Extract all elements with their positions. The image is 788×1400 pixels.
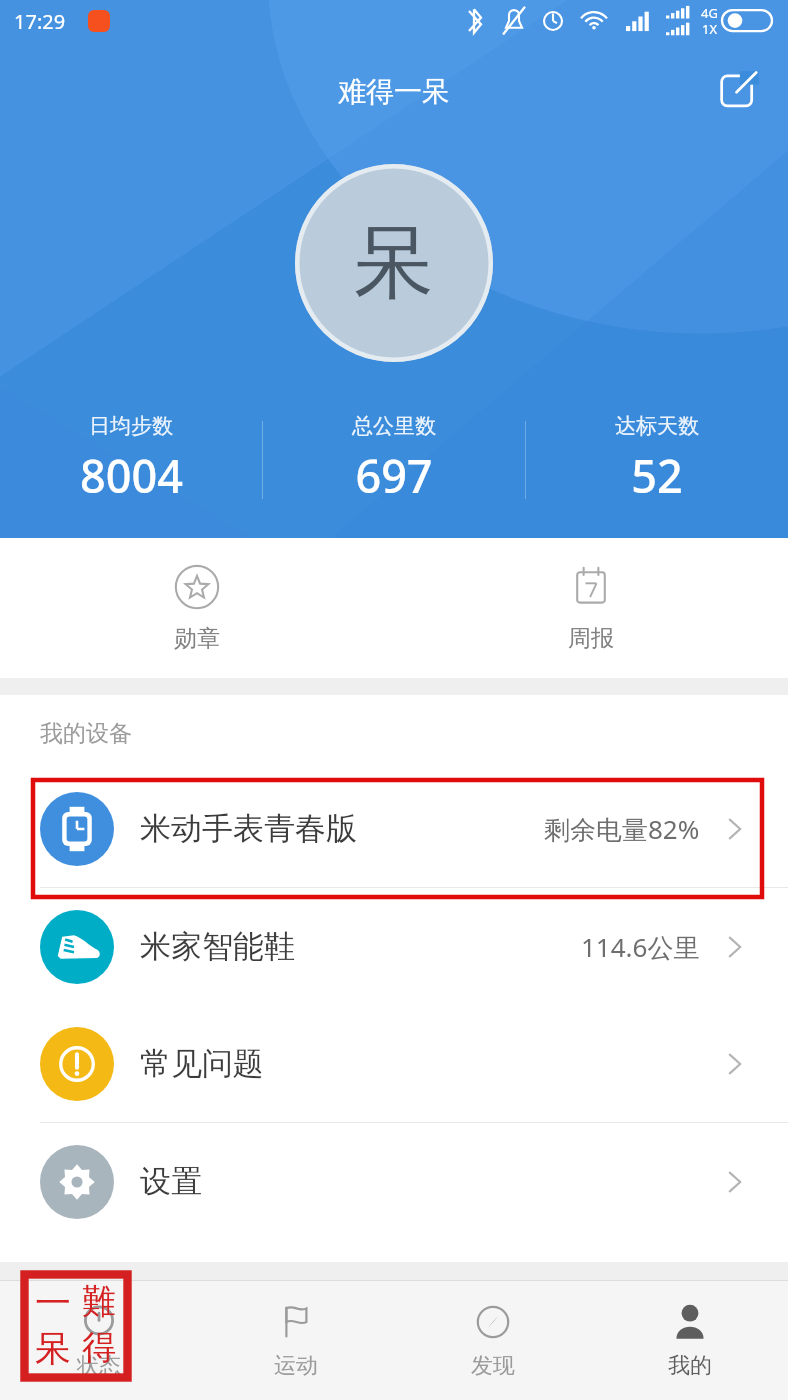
staticText: 勋章 [174, 624, 220, 653]
button[interactable]: 编辑 [706, 58, 770, 122]
staticText: 4G [701, 4, 718, 22]
staticText: 呆 [354, 213, 434, 314]
button[interactable]: 发现 [394, 1281, 591, 1400]
staticText: 达标天数 [615, 413, 699, 439]
staticText: 52 [631, 445, 683, 506]
staticText: 難 [76, 1280, 122, 1323]
button[interactable]: 总公里数 [263, 413, 525, 506]
button[interactable]: 勋章 [0, 538, 394, 678]
button[interactable]: 米家智能鞋 [0, 888, 788, 1005]
staticText: 一 [30, 1280, 76, 1325]
staticText: 8004 [80, 445, 183, 506]
button[interactable]: 设置 [0, 1123, 788, 1240]
button[interactable]: 常见问题 [0, 1005, 788, 1122]
staticText: 米家智能鞋 [140, 927, 295, 966]
staticText: 114.6公里 [581, 929, 700, 965]
staticText: 1X [702, 20, 718, 38]
staticText: 总公里数 [352, 413, 436, 439]
staticText: 剩余电量82% [544, 811, 700, 847]
staticText: 设置 [140, 1162, 202, 1201]
button[interactable]: 达标天数 [526, 413, 788, 506]
staticText: 难得一呆 [338, 74, 450, 109]
button[interactable]: 米动手表青春版 [0, 770, 788, 887]
button[interactable]: 周报 [394, 538, 788, 678]
staticText: 我的设备 [40, 719, 132, 748]
button[interactable]: 日均步数 [0, 413, 262, 506]
staticText: 米动手表青春版 [140, 809, 357, 848]
button[interactable]: 运动 [197, 1281, 394, 1400]
staticText: 17:29 [14, 8, 66, 35]
button[interactable]: 呆 [295, 164, 493, 362]
staticText: 得 [76, 1326, 122, 1369]
staticText: 日均步数 [89, 413, 173, 439]
staticText: 我的 [668, 1352, 712, 1380]
staticText: 常见问题 [140, 1044, 264, 1083]
staticText: 状态 [77, 1352, 121, 1380]
staticText: 运动 [274, 1352, 318, 1380]
staticText: 697 [355, 445, 433, 506]
button[interactable]: 我的 [591, 1281, 788, 1400]
staticText: 发现 [471, 1352, 515, 1380]
staticText: 周报 [568, 624, 614, 653]
staticText: 呆 [30, 1326, 76, 1371]
button[interactable]: 状态 [0, 1281, 197, 1400]
